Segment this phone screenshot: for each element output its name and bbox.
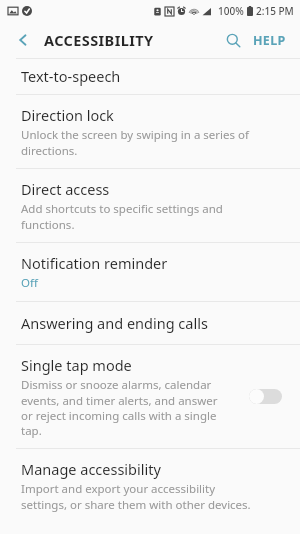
button[interactable]: Answering and ending calls [0, 302, 300, 344]
staticText: Notification reminder [21, 253, 168, 273]
staticText: ACCESSIBILITY [44, 30, 154, 50]
button[interactable]: Single tap mode [0, 345, 300, 448]
staticText: Manage accessibility [21, 459, 161, 479]
button[interactable]: Notification reminder [0, 243, 300, 301]
button[interactable]: Direct access [0, 169, 300, 242]
button[interactable]: Manage accessibility [0, 449, 300, 522]
button[interactable]: Single tap mode toggle [245, 385, 286, 408]
staticText: Direction lock [21, 105, 114, 125]
staticText: Unlock the screen by swiping in a series… [21, 127, 249, 158]
button[interactable]: HELP [249, 26, 290, 55]
staticText: Direct access [21, 179, 110, 199]
button[interactable]: Back [8, 25, 38, 55]
staticText: HELP [253, 32, 286, 49]
staticText: 100% [218, 4, 244, 18]
staticText: Dismiss or snooze alarms, calendar event… [21, 377, 218, 438]
staticText: Add shortcuts to specific settings and f… [21, 201, 223, 232]
staticText: Answering and ending calls [21, 313, 208, 333]
staticText: Off [21, 275, 38, 291]
staticText: Text-to-speech [21, 66, 121, 86]
staticText: 2:15 PM [256, 4, 294, 18]
button[interactable]: Text-to-speech [0, 59, 300, 94]
button[interactable]: Search [217, 24, 249, 56]
button[interactable]: Direction lock [0, 95, 300, 168]
staticText: Single tap mode [21, 355, 132, 375]
staticText: Import and export your accessibility set… [21, 481, 251, 512]
